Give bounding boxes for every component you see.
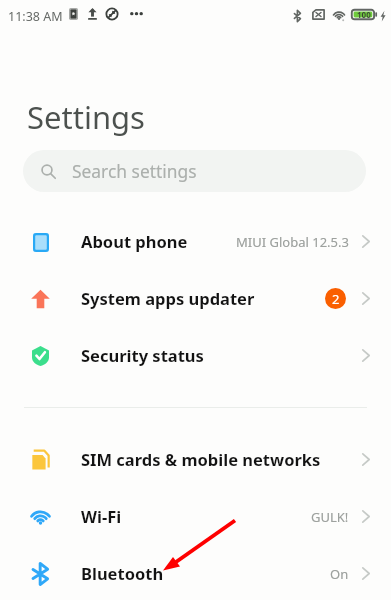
- staticText: On: [330, 565, 349, 583]
- button[interactable]: Search settings: [23, 150, 366, 192]
- staticText: Security status: [81, 344, 204, 366]
- button[interactable]: System apps updater: [0, 270, 391, 327]
- button[interactable]: Wi-Fi: [0, 488, 391, 545]
- staticText: MIUI Global 12.5.3: [236, 233, 349, 251]
- staticText: Search settings: [72, 159, 197, 183]
- staticText: GULK!: [311, 508, 349, 526]
- staticText: Bluetooth: [81, 562, 164, 584]
- button[interactable]: Security status: [0, 327, 391, 384]
- button[interactable]: Bluetooth: [0, 545, 391, 600]
- staticText: Wi-Fi: [81, 505, 122, 527]
- staticText: Settings: [27, 96, 145, 138]
- button[interactable]: About phone: [0, 213, 391, 270]
- button[interactable]: SIM cards & mobile networks: [0, 431, 391, 488]
- staticText: 100: [357, 9, 371, 20]
- staticText: SIM cards & mobile networks: [81, 448, 321, 470]
- staticText: About phone: [81, 230, 188, 252]
- staticText: System apps updater: [81, 287, 255, 309]
- staticText: 2: [332, 290, 340, 308]
- staticText: 11:38 AM: [8, 8, 63, 25]
